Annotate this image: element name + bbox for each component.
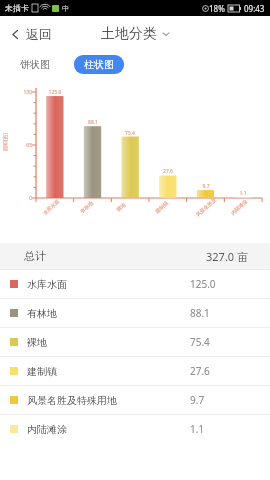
button[interactable]: 柱状图	[74, 55, 124, 74]
staticText: 裸地	[115, 201, 127, 213]
staticText: 9.7	[190, 393, 205, 407]
staticText: 130	[18, 89, 32, 96]
staticText: 面积(亩)	[2, 132, 9, 151]
staticText: 建制镇	[154, 200, 169, 214]
staticText: 65	[18, 142, 32, 149]
staticText: 75.4	[118, 130, 142, 137]
button[interactable]: 有林地	[0, 298, 270, 327]
button[interactable]: 土地分类	[97, 21, 174, 47]
staticText: 土地分类	[101, 25, 157, 43]
staticText: 水库水面	[42, 198, 60, 216]
button[interactable]: 水库水面	[0, 269, 270, 298]
staticText: 1.1	[190, 422, 205, 436]
staticText: 风景名胜及特殊用地	[27, 394, 117, 407]
staticText: 中	[62, 4, 69, 13]
staticText: 有林地	[79, 200, 94, 214]
button[interactable]: 建制镇	[0, 356, 270, 385]
staticText: 88.1	[81, 119, 105, 126]
staticText: 柱状图	[84, 58, 114, 71]
staticText: 建制镇	[27, 365, 57, 378]
staticText: 风景名胜及特殊用地	[194, 195, 218, 219]
staticText: 18%	[209, 3, 225, 14]
button[interactable]: 裸地	[0, 327, 270, 356]
staticText: 总计	[24, 249, 46, 263]
staticText: 内陆滩涂	[230, 198, 248, 216]
staticText: 饼状图	[20, 58, 50, 71]
staticText: 水库水面	[27, 278, 67, 291]
staticText: 内陆滩涂	[27, 423, 67, 436]
staticText: 125.0	[43, 89, 67, 96]
button[interactable]: 返回	[0, 20, 62, 48]
staticText: 返回	[26, 26, 52, 42]
staticText: 裸地	[27, 336, 47, 349]
staticText: 有林地	[27, 307, 57, 320]
staticText: 0	[18, 195, 32, 202]
staticText: 9.7	[194, 183, 218, 190]
staticText: 1.1	[231, 190, 255, 197]
staticText: 125.0	[190, 277, 216, 291]
other: Expand category	[162, 30, 170, 38]
staticText: 75.4	[190, 335, 210, 349]
button[interactable]: 内陆滩涂	[0, 414, 270, 443]
button[interactable]: 风景名胜及特殊用地	[0, 385, 270, 414]
staticText: 327.0 亩	[206, 249, 248, 264]
staticText: 27.6	[156, 168, 180, 175]
button[interactable]: 饼状图	[12, 55, 58, 74]
staticText: 09:43	[244, 3, 265, 14]
staticText: 未插卡	[5, 3, 29, 13]
staticText: 27.6	[190, 364, 210, 378]
staticText: 88.1	[190, 306, 210, 320]
